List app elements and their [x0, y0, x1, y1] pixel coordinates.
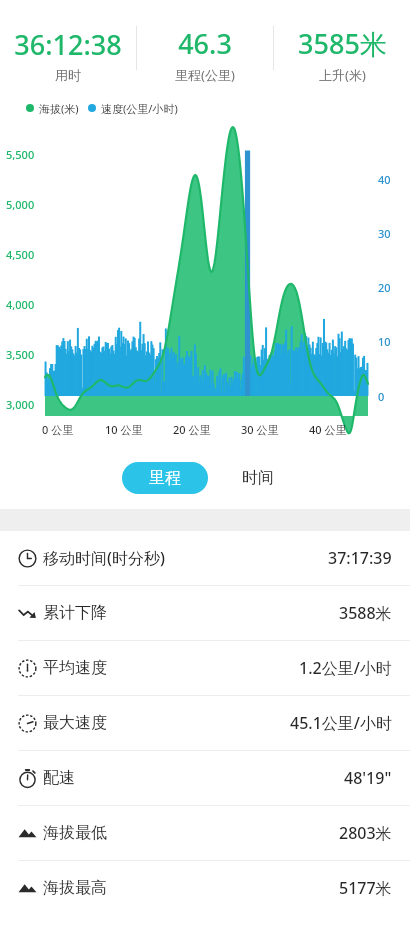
staticText: 0 [378, 389, 385, 404]
staticText: 0 公里 [42, 422, 74, 437]
staticText: 移动时间(时分秒) [43, 547, 165, 569]
button[interactable]: 海拔最低 [0, 806, 410, 860]
button[interactable]: 平均速度 [0, 641, 410, 695]
staticText: 3,000 [6, 397, 35, 412]
staticText: 3588米 [339, 602, 392, 624]
staticText: 累计下降 [43, 603, 107, 623]
staticText: 3,500 [6, 347, 35, 362]
staticText: 上升(米) [319, 66, 366, 84]
staticText: 40 公里 [309, 422, 347, 437]
staticText: 20 公里 [173, 422, 211, 437]
button[interactable]: 最大速度 [0, 696, 410, 750]
other: 平均速度 [18, 659, 37, 678]
staticText: 36:12:38 [14, 26, 122, 63]
button[interactable]: 移动时间(时分秒) [0, 531, 410, 585]
staticText: 20 [378, 280, 391, 295]
staticText: 30 [378, 226, 391, 241]
staticText: 4,000 [6, 297, 35, 312]
staticText: 40 [378, 172, 391, 187]
button[interactable]: 时间 [228, 462, 288, 494]
staticText: 用时 [55, 67, 81, 83]
other: 移动时间(时分秒) [18, 549, 37, 568]
staticText: 1.2公里/小时 [299, 657, 392, 679]
button[interactable]: 海拔最高 [0, 861, 410, 915]
staticText: 46.3 [178, 25, 232, 62]
other: 最大速度 [18, 714, 37, 733]
staticText: 30 公里 [241, 422, 279, 437]
staticText: 平均速度 [43, 658, 107, 678]
staticText: 时间 [242, 468, 274, 488]
staticText: 37:17:39 [328, 547, 392, 569]
staticText: 4,500 [6, 247, 35, 262]
button[interactable]: 累计下降 [0, 586, 410, 640]
staticText: 最大速度 [43, 713, 107, 733]
staticText: 里程 [149, 468, 181, 488]
button[interactable]: 配速 [0, 751, 410, 805]
staticText: 海拔(米) [39, 101, 79, 116]
other: 海拔最高 [18, 879, 37, 898]
staticText: 10 公里 [105, 422, 143, 437]
staticText: 海拔最高 [43, 878, 107, 898]
staticText: 48'19" [344, 767, 392, 789]
other: 累计下降 [18, 604, 37, 623]
staticText: 速度(公里/小时) [101, 101, 178, 116]
staticText: 5,500 [6, 147, 35, 162]
staticText: 5177米 [339, 877, 392, 899]
staticText: 配速 [43, 768, 75, 788]
other: 海拔最低 [18, 824, 37, 843]
button[interactable]: 里程 [122, 462, 208, 494]
staticText: 2803米 [339, 822, 392, 844]
staticText: 5,000 [6, 197, 35, 212]
staticText: 10 [378, 334, 391, 349]
other: 配速 [18, 769, 37, 788]
staticText: 45.1公里/小时 [290, 712, 392, 734]
staticText: 3585米 [298, 25, 387, 62]
staticText: 海拔最低 [43, 823, 107, 843]
staticText: 里程(公里) [175, 66, 235, 84]
